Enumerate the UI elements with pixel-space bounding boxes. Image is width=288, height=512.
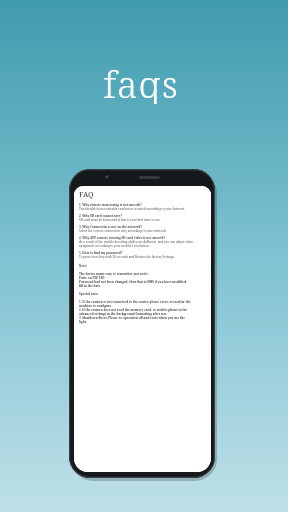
staticText: machine to configure. <box>79 304 113 308</box>
staticText: 1. Why remote monitoring is not smooth? <box>79 203 142 207</box>
staticText: As a result of the mobile decoding abili… <box>79 240 207 248</box>
staticText: faqs <box>103 58 179 104</box>
staticText: Note: <box>79 264 88 268</box>
staticText: You should choose suitable resolution to… <box>79 207 186 211</box>
staticText: 3. Why Connection is not on the network? <box>79 225 142 229</box>
staticText: light. <box>79 320 87 324</box>
staticText: The device name easy to remember just wr… <box>79 272 149 276</box>
staticText: FAQ <box>79 189 94 199</box>
staticText: 2. Why SD card cannot save? <box>79 214 123 218</box>
staticText: 2. If the camera does not read the memor… <box>79 308 188 312</box>
button[interactable]: FAQ screen preview <box>69 169 217 481</box>
button[interactable]: faqs <box>82 58 200 104</box>
staticText: 4. Why APP remote viewing SD card video … <box>79 236 166 240</box>
staticText: SD card must be formatted if this is you… <box>79 218 161 222</box>
staticText: 3. Shutdown Reset: Please re-operation o… <box>79 316 185 320</box>
staticText: To press reset key with 10 seconds and R… <box>79 255 175 259</box>
staticText: 5. How to find my password? <box>79 251 123 255</box>
staticText: Select the correct connection way accord… <box>79 229 167 233</box>
staticText: advanced settings in the background form… <box>79 312 168 316</box>
staticText: fill in the date. <box>79 284 102 288</box>
staticText: Password had not been changed, then that… <box>79 280 187 284</box>
staticText: Paste on P2P UID <box>79 276 105 280</box>
staticText: Special note: <box>79 292 99 296</box>
staticText: 1. If the camera is not connected to the… <box>79 300 191 304</box>
